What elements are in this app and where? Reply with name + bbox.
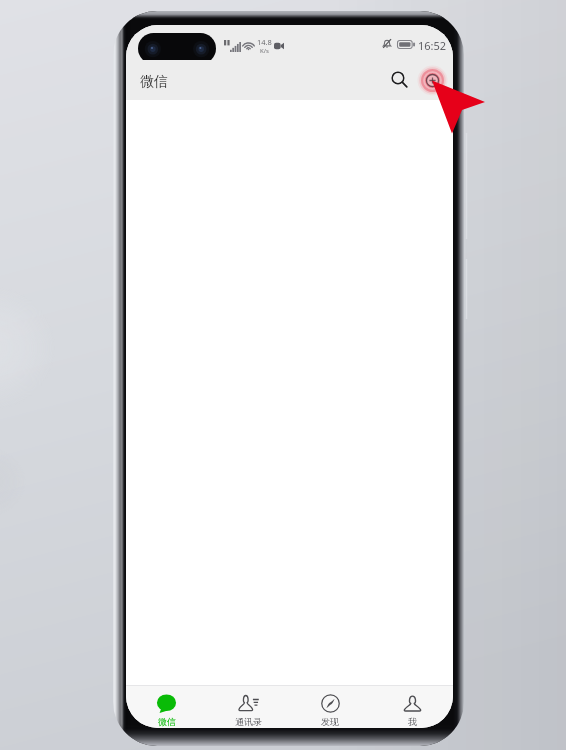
button[interactable]: 通讯录: [207, 686, 289, 728]
staticText: 通讯录: [235, 716, 262, 727]
staticText: 微信: [158, 716, 176, 727]
staticText: 14.8: [257, 37, 272, 47]
button[interactable]: 发现: [289, 686, 371, 728]
staticText: 16:52: [418, 38, 447, 53]
button[interactable]: 我: [371, 686, 453, 728]
staticText: 发现: [321, 716, 339, 727]
button[interactable]: 微信: [126, 686, 207, 728]
staticText: 我: [408, 716, 417, 727]
staticText: 微信: [140, 73, 168, 91]
button[interactable]: Search: [384, 64, 415, 95]
staticText: K/s: [260, 47, 269, 55]
button[interactable]: Add: [416, 64, 449, 97]
